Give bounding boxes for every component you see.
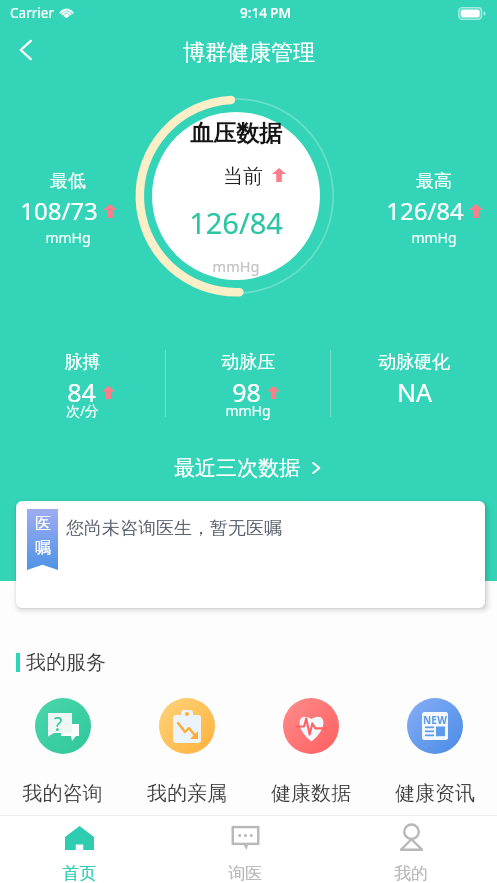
staticText: 最近三次数据	[174, 455, 300, 481]
button[interactable]: 我的亲属	[125, 698, 249, 806]
staticText: 9:14 PM	[240, 4, 291, 22]
button[interactable]: ?	[0, 698, 125, 806]
staticText: 血压数据	[138, 119, 334, 148]
staticText: 108/73	[20, 194, 98, 227]
staticText: mmHg	[165, 401, 331, 420]
staticText: 126/84	[138, 203, 334, 242]
button[interactable]: 健康数据	[249, 698, 373, 806]
button[interactable]: 我的	[331, 815, 497, 883]
staticText: 嘱	[35, 538, 51, 558]
staticText: mmHg	[8, 228, 128, 247]
staticText: 当前	[223, 164, 263, 189]
staticText: 医	[35, 514, 51, 534]
staticText: 您尚未咨询医生，暂无医嘱	[66, 517, 282, 540]
staticText: mmHg	[138, 256, 334, 276]
button[interactable]: NEW	[373, 698, 497, 806]
button[interactable]: Back	[4, 28, 48, 72]
staticText: ?	[54, 711, 63, 737]
staticText: 动脉压	[165, 351, 331, 374]
staticText: 健康资讯	[373, 781, 497, 806]
staticText: 84	[67, 375, 96, 409]
staticText: 最高	[374, 170, 494, 193]
button[interactable]: 最近三次数据	[162, 450, 335, 486]
staticText: 次/分	[0, 401, 165, 420]
button[interactable]: 询医	[165, 815, 331, 883]
staticText: 我的服务	[26, 650, 106, 675]
staticText: Carrier	[10, 4, 54, 22]
staticText: 我的咨询	[0, 781, 125, 806]
staticText: 首页	[0, 863, 162, 883]
staticText: 健康数据	[249, 781, 373, 806]
staticText: 最低	[8, 170, 128, 193]
button[interactable]: 医	[16, 501, 485, 608]
staticText: 我的亲属	[125, 781, 249, 806]
staticText: 动脉硬化	[331, 351, 497, 374]
button[interactable]: 首页	[0, 815, 165, 883]
staticText: 询医	[162, 863, 328, 883]
staticText: 脉搏	[0, 351, 165, 374]
staticText: 博群健康管理	[183, 39, 315, 67]
staticText: 我的	[328, 863, 494, 883]
staticText: mmHg	[374, 228, 494, 247]
staticText: 98	[232, 375, 261, 409]
staticText: NA	[397, 375, 432, 409]
staticText: NEW	[423, 713, 447, 727]
staticText: 126/84	[386, 194, 464, 227]
